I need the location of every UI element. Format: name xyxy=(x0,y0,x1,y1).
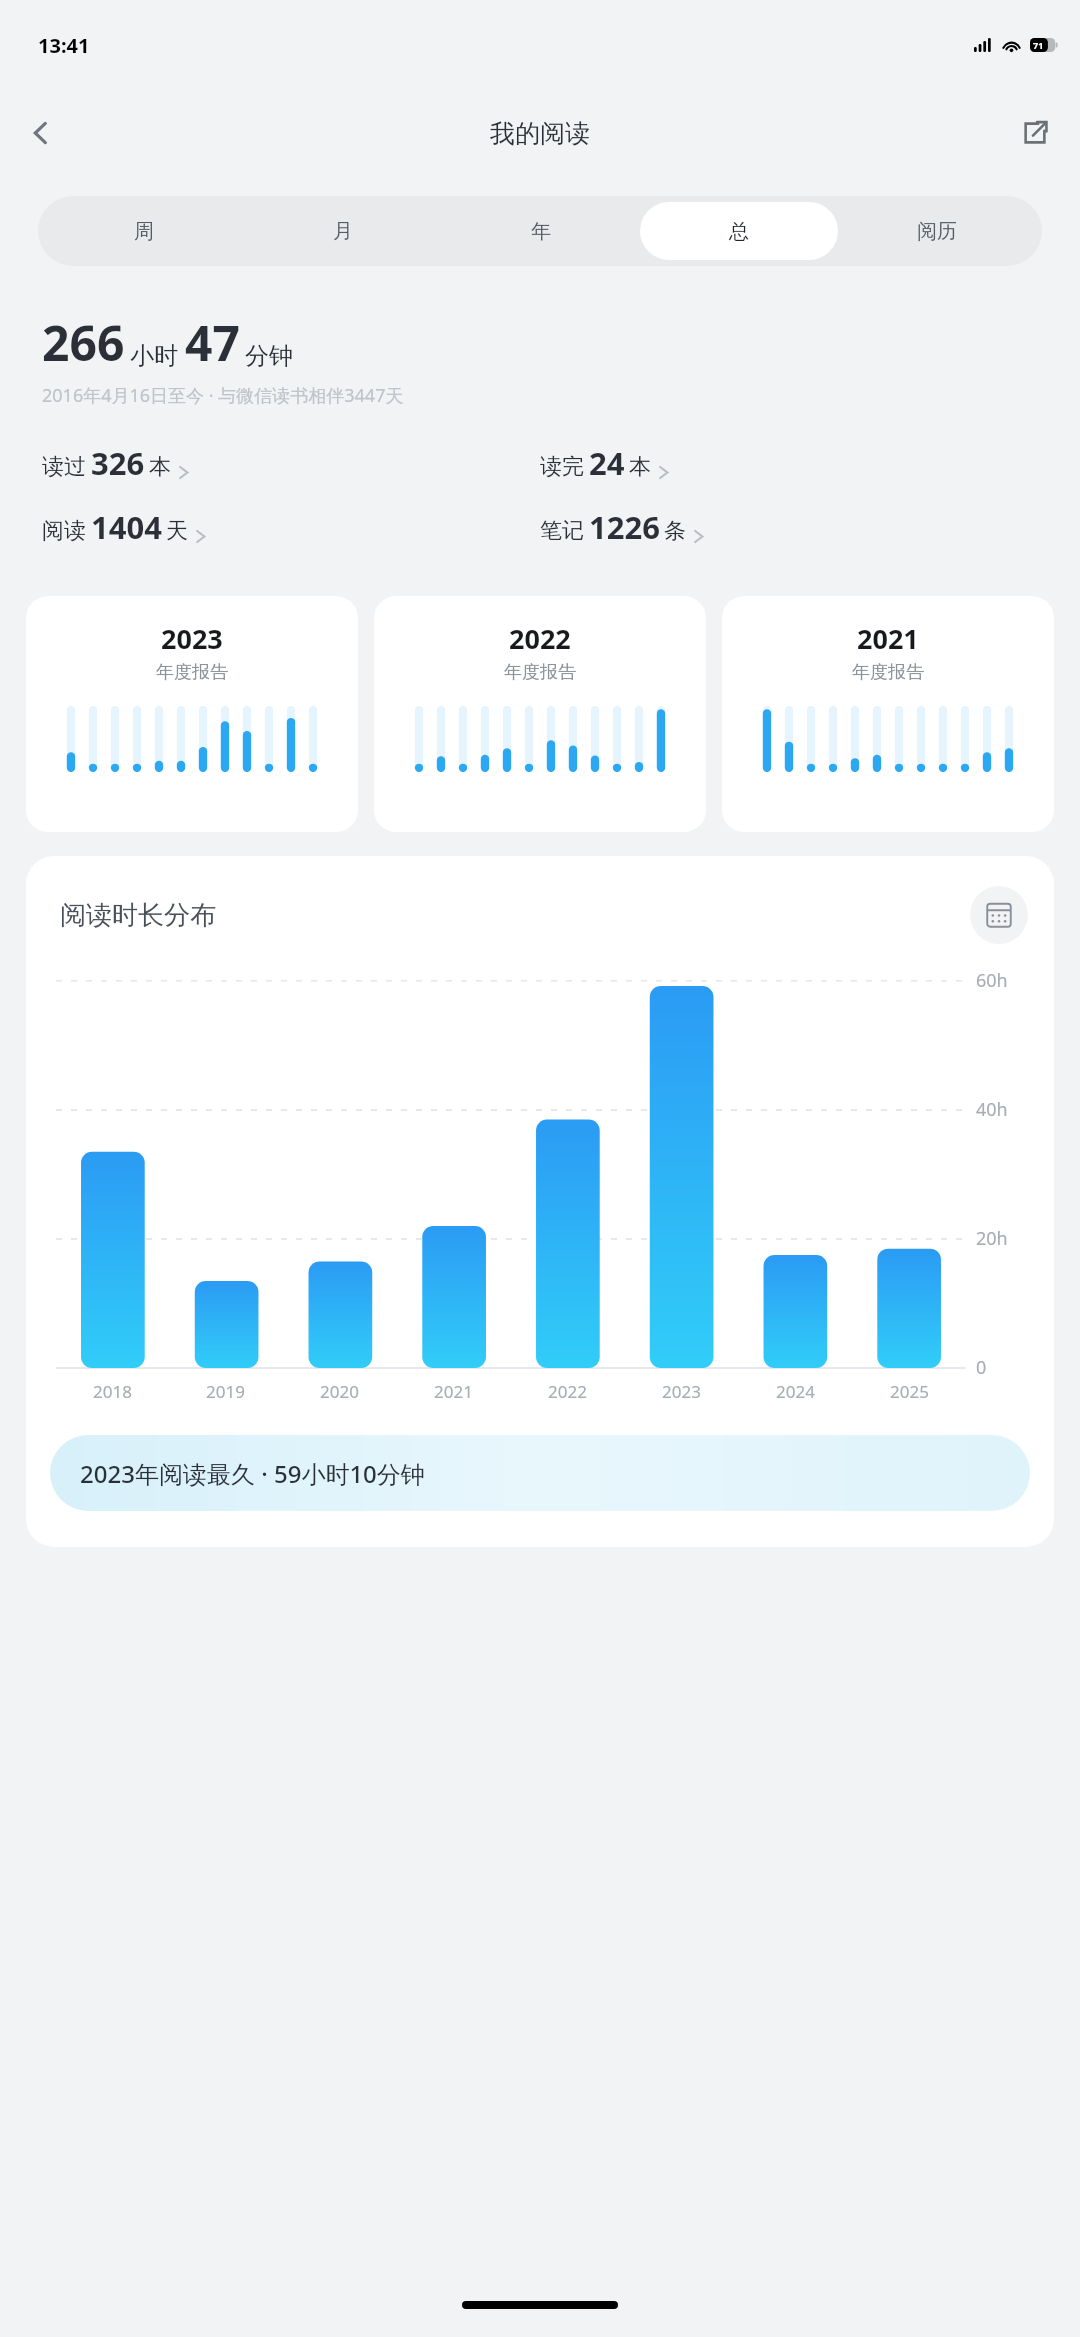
staticText: 总 xyxy=(729,219,749,244)
staticText: 2016年4月16日至今 · 与微信读书相伴3447天 xyxy=(42,383,404,408)
staticText: 2023 xyxy=(161,620,223,657)
staticText: 2019 xyxy=(206,1380,245,1403)
button[interactable]: 读过 xyxy=(42,438,540,488)
staticText: 本 xyxy=(629,453,651,481)
staticText: 2025 xyxy=(890,1380,929,1403)
staticText: 小时 xyxy=(130,341,178,371)
staticText: 40h xyxy=(976,1097,1008,1122)
button[interactable]: 月 xyxy=(243,202,442,260)
staticText: 年 xyxy=(531,219,551,244)
staticText: 天 xyxy=(166,517,188,545)
button[interactable]: 2021 xyxy=(722,596,1054,832)
staticText: 年度报告 xyxy=(156,661,228,684)
staticText: 2022 xyxy=(509,620,571,657)
staticText: 读过 xyxy=(42,453,86,481)
staticText: 0 xyxy=(976,1355,987,1380)
staticText: 13:41 xyxy=(38,32,90,59)
button[interactable]: 年 xyxy=(442,202,640,260)
staticText: 2018 xyxy=(93,1380,132,1403)
staticText: 年度报告 xyxy=(504,661,576,684)
staticText: 阅读 xyxy=(42,517,86,545)
button[interactable]: 读完 xyxy=(540,438,1038,488)
staticText: 周 xyxy=(134,219,154,244)
staticText: 2023年阅读最久 · 59小时10分钟 xyxy=(80,1457,425,1490)
staticText: 326 xyxy=(91,442,145,484)
staticText: 2024 xyxy=(776,1380,815,1403)
staticText: 1404 xyxy=(91,506,162,548)
staticText: 阅历 xyxy=(917,219,957,244)
staticText: 71 xyxy=(1033,39,1044,51)
button[interactable]: 总 xyxy=(640,202,838,260)
staticText: 266 xyxy=(42,310,125,375)
staticText: 2020 xyxy=(320,1380,359,1403)
button[interactable]: 2023年阅读最久 · 59小时10分钟 xyxy=(50,1435,1030,1511)
staticText: 2021 xyxy=(857,620,919,657)
button[interactable]: 阅历 xyxy=(838,202,1036,260)
staticText: 2023 xyxy=(662,1380,701,1403)
button[interactable]: Share xyxy=(1008,106,1062,160)
button[interactable]: 周 xyxy=(44,202,243,260)
staticText: 月 xyxy=(333,219,353,244)
staticText: 20h xyxy=(976,1226,1008,1251)
staticText: 47 xyxy=(185,310,240,375)
staticText: 读完 xyxy=(540,453,584,481)
staticText: 分钟 xyxy=(245,341,293,371)
button[interactable]: 2022 xyxy=(374,596,706,832)
staticText: 阅读时长分布 xyxy=(60,899,970,932)
button[interactable]: Back xyxy=(14,106,68,160)
button[interactable]: 阅读 xyxy=(42,502,540,552)
staticText: 24 xyxy=(589,442,625,484)
staticText: 60h xyxy=(976,968,1008,993)
staticText: 2022 xyxy=(548,1380,587,1403)
staticText: 1226 xyxy=(589,506,660,548)
button[interactable]: 2023 xyxy=(26,596,358,832)
button[interactable]: 笔记 xyxy=(540,502,1038,552)
staticText: 年度报告 xyxy=(852,661,924,684)
staticText: 我的阅读 xyxy=(490,118,590,149)
staticText: 2021 xyxy=(434,1380,473,1403)
button[interactable]: Calendar xyxy=(970,886,1028,944)
staticText: 条 xyxy=(664,517,686,545)
staticText: 笔记 xyxy=(540,517,584,545)
staticText: 本 xyxy=(149,453,171,481)
